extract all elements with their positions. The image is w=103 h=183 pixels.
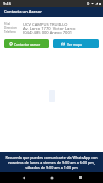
staticText: Filial bbox=[4, 22, 23, 26]
button[interactable]: Contactar asesor bbox=[4, 39, 49, 48]
button[interactable]: Recents bbox=[75, 172, 86, 183]
button[interactable]: Back bbox=[18, 172, 29, 183]
staticText: Contacta un Asesor bbox=[4, 9, 43, 15]
staticText: (044) 485 000 Anexo 7001 bbox=[23, 30, 73, 34]
staticText: Recuerda que puedes comunicarte vía What… bbox=[4, 155, 99, 170]
staticText: UCV CAMPUS TRUJILLO bbox=[23, 22, 68, 26]
staticText: Telefono bbox=[4, 30, 23, 34]
staticText: Direccion bbox=[4, 26, 23, 30]
staticText: 0 bbox=[87, 1, 90, 6]
staticText: Av. Larco 1770, Victor Larco bbox=[23, 26, 76, 30]
staticText: 9:46 bbox=[3, 1, 11, 6]
staticText: Contactar asesor bbox=[14, 42, 41, 46]
staticText: Ver mapa bbox=[67, 42, 82, 46]
button[interactable]: Home bbox=[46, 172, 57, 183]
button[interactable]: Ver mapa bbox=[53, 39, 99, 48]
